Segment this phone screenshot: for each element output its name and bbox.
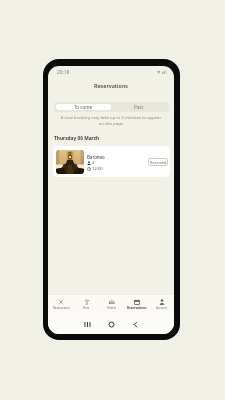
button[interactable]: Back <box>129 318 141 330</box>
button[interactable]: Recents <box>81 318 93 330</box>
staticText: To come <box>74 104 93 110</box>
button[interactable]: Bars <box>74 295 99 313</box>
button[interactable]: Home <box>105 318 117 330</box>
button[interactable]: Hotels <box>99 295 124 313</box>
staticText: Reservations <box>127 306 147 310</box>
button[interactable]: Past <box>111 104 167 110</box>
staticText: Restaurants <box>53 306 70 310</box>
staticText: 2 <box>92 160 95 166</box>
staticText: Reservations <box>94 82 129 89</box>
button[interactable]: Baroneo <box>53 146 170 177</box>
button[interactable]: Reservations <box>124 295 149 313</box>
button[interactable]: Reserved <box>148 158 168 166</box>
staticText: Bars <box>83 306 90 310</box>
button[interactable]: Restaurants <box>48 295 74 313</box>
staticText: Account <box>156 306 168 310</box>
staticText: A new booking may take up to 5 minutes t… <box>56 115 166 126</box>
staticText: 12:00 <box>92 166 103 172</box>
button[interactable]: To come <box>56 104 111 110</box>
staticText: Hotels <box>107 306 117 310</box>
staticText: Reserved <box>150 160 167 165</box>
staticText: 20:18 <box>57 69 70 76</box>
staticText: Past <box>134 104 144 110</box>
staticText: Thursday 06 March <box>54 135 100 142</box>
button[interactable]: Account <box>149 295 174 313</box>
staticText: Baroneo <box>87 154 105 160</box>
